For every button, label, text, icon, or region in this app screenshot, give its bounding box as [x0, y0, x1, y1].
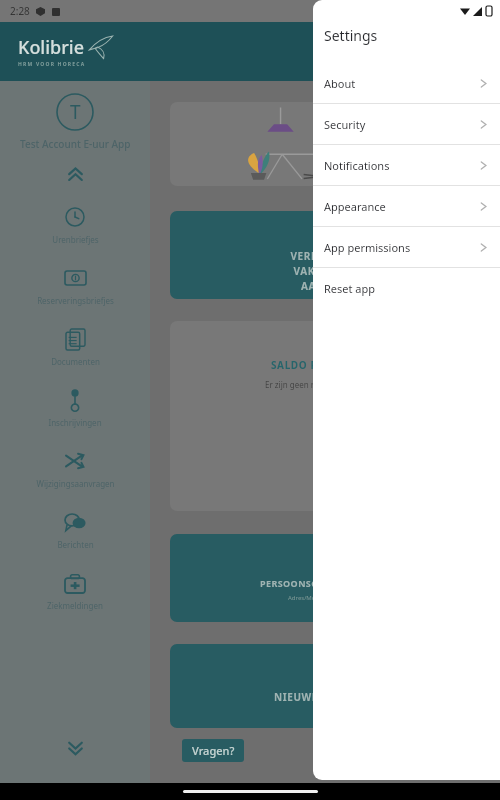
button[interactable]: Security — [313, 104, 500, 144]
staticText: Settings — [324, 26, 378, 45]
button[interactable]: Reset app — [313, 268, 500, 308]
button[interactable]: Vragen? — [182, 739, 244, 762]
button[interactable]: About — [313, 63, 500, 103]
button[interactable]: Wijzigingsaanvragen — [0, 439, 150, 500]
button[interactable]: Expand — [62, 735, 88, 761]
staticText: Notifications — [324, 158, 478, 173]
button[interactable]: Inschrijvingen — [0, 378, 150, 439]
button[interactable]: Notifications — [313, 145, 500, 185]
staticText: Test Account E-uur App — [20, 137, 131, 151]
staticText: VERLOFUREN OF VAKANTIEGELD AANVRAGEN — [170, 249, 500, 293]
staticText: Kolibrie — [18, 35, 85, 60]
staticText: App permissions — [324, 240, 478, 255]
staticText: Berichten — [57, 539, 94, 550]
button[interactable]: PERSOONSGEGEVENS WIJZIGEN — [170, 534, 500, 622]
staticText: Er zijn geen reserveringen gevonden. — [265, 379, 405, 390]
staticText: SALDO RESERVERINGEN — [271, 358, 400, 372]
staticText: Urenbriefjes — [52, 234, 99, 245]
button[interactable]: Appearance — [313, 186, 500, 226]
staticText: Reset app — [324, 281, 489, 296]
button[interactable]: Documenten — [0, 317, 150, 378]
staticText: Vragen? — [192, 743, 235, 758]
staticText: PERSOONSGEGEVENS WIJZIGEN — [260, 577, 410, 589]
staticText: T — [70, 99, 81, 125]
staticText: NIEUWE ZIEKMELDING — [274, 690, 397, 704]
button[interactable] — [170, 102, 500, 186]
staticText: Ziekmeldingen — [47, 600, 103, 611]
button[interactable]: Collapse — [62, 161, 88, 187]
button[interactable]: VERLOFUREN OF VAKANTIEGELD AANVRAGEN — [170, 211, 500, 299]
staticText: Documenten — [51, 356, 100, 367]
staticText: About — [324, 76, 478, 91]
button[interactable]: NIEUWE ZIEKMELDING — [170, 644, 500, 728]
button[interactable]: App permissions — [313, 227, 500, 267]
button[interactable]: Ziekmeldingen — [0, 561, 150, 622]
staticText: Reserveringsbriefjes — [37, 295, 114, 306]
staticText: Security — [324, 117, 478, 132]
staticText: 2:28 — [10, 4, 30, 18]
button[interactable]: SALDO RESERVERINGEN — [170, 321, 500, 511]
button[interactable]: Reserveringsbriefjes — [0, 256, 150, 317]
staticText: Adres/Mobiel/Mail/Bankrekening — [288, 594, 382, 602]
button[interactable]: Urenbriefjes — [0, 195, 150, 256]
button[interactable]: Account — [56, 93, 94, 131]
button[interactable]: Berichten — [0, 500, 150, 561]
staticText: Appearance — [324, 199, 478, 214]
staticText: Inschrijvingen — [48, 417, 102, 428]
staticText: Wijzigingsaanvragen — [36, 478, 115, 489]
staticText: HRM VOOR HORECA — [18, 61, 86, 68]
